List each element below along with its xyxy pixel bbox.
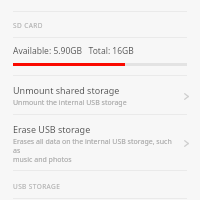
staticText: SD CARD [13, 21, 43, 30]
other: Open [181, 138, 192, 149]
staticText: USB STORAGE [13, 182, 61, 191]
staticText: Unmount shared storage [13, 84, 120, 96]
button[interactable]: Erase USB storage [0, 115, 200, 170]
other: Open [181, 91, 192, 102]
staticText: Erase USB storage [13, 123, 91, 135]
staticText: Erases all data on the internal USB stor… [13, 137, 177, 164]
staticText: Unmount the internal USB storage [13, 98, 127, 108]
button[interactable]: Unmount shared storage [0, 76, 200, 114]
staticText: Available: 5.90GB Total: 16GB [13, 45, 134, 57]
